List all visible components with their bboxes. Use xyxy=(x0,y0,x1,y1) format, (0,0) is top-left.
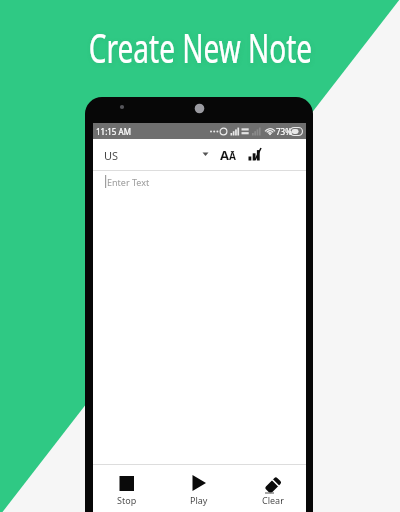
staticText: Play xyxy=(190,494,208,506)
staticText: Clear xyxy=(262,494,284,506)
button[interactable]: US xyxy=(99,143,214,167)
button[interactable]: A xyxy=(220,143,240,167)
button[interactable]: Stop xyxy=(107,470,147,504)
staticText: Enter Text xyxy=(107,176,150,188)
button[interactable]: Play xyxy=(179,470,219,504)
staticText: 73% xyxy=(276,126,292,137)
staticText: A xyxy=(220,146,229,164)
staticText: Create New Note xyxy=(89,20,312,74)
staticText: 11:15 AM xyxy=(96,126,131,137)
button[interactable] xyxy=(245,143,267,167)
staticText: US xyxy=(104,148,119,163)
staticText: Ā xyxy=(229,149,236,163)
button[interactable]: Clear xyxy=(253,470,293,504)
staticText: Stop xyxy=(117,494,137,506)
